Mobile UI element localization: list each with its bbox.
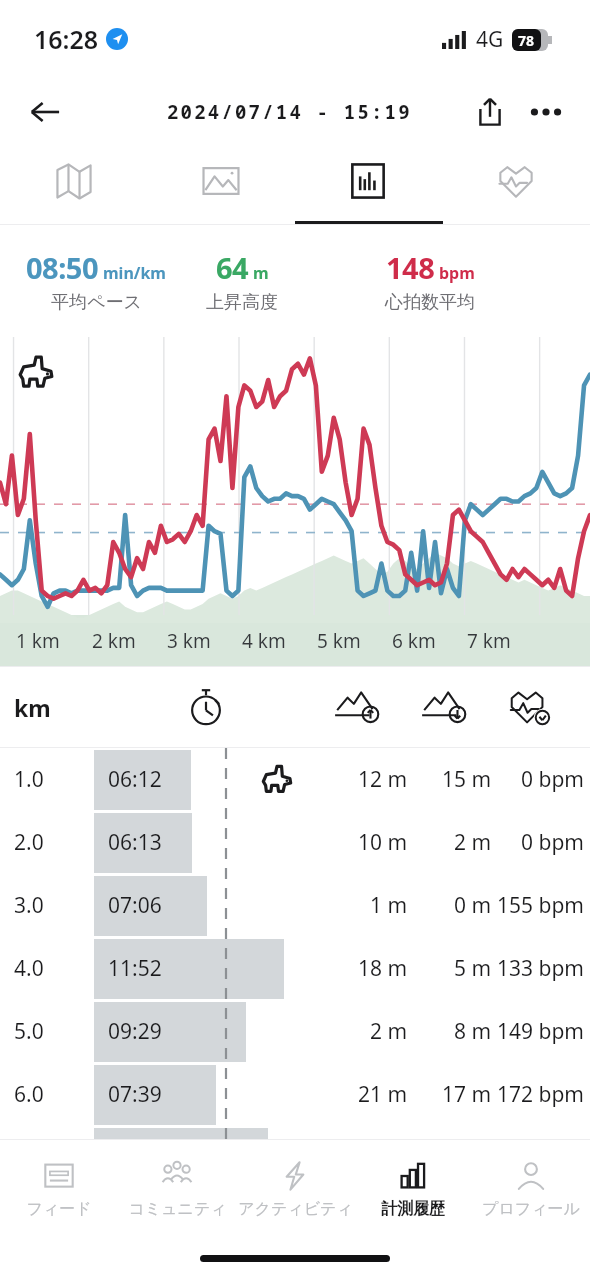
staticText: 06:12 bbox=[108, 765, 162, 794]
button[interactable]: 5.0 bbox=[0, 1000, 590, 1063]
button[interactable]: 2.0 bbox=[0, 811, 590, 874]
staticText: 2024/07/14 - 15:19 bbox=[167, 99, 412, 125]
button[interactable]: プロフィール bbox=[472, 1140, 590, 1236]
staticText: 1.0 bbox=[14, 765, 44, 794]
staticText: 16:28 bbox=[34, 22, 99, 56]
button[interactable]: Heart rate tab bbox=[442, 146, 590, 224]
staticText: 2 m bbox=[454, 828, 492, 857]
other: Descent bbox=[419, 681, 471, 733]
staticText: 7 km bbox=[467, 628, 511, 654]
staticText: プロフィール bbox=[482, 1199, 580, 1219]
button[interactable]: 6.0 bbox=[0, 1063, 590, 1126]
staticText: 18 m bbox=[358, 954, 408, 983]
staticText: 08:50 bbox=[26, 248, 99, 287]
staticText: 3 km bbox=[167, 628, 211, 654]
staticText: min/km bbox=[103, 262, 166, 284]
staticText: 0 m bbox=[454, 891, 492, 920]
button[interactable]: Map tab bbox=[0, 146, 147, 224]
staticText: 144 bpm bbox=[497, 1143, 584, 1172]
button[interactable]: Photos tab bbox=[147, 146, 294, 224]
staticText: 3.0 bbox=[14, 891, 44, 920]
staticText: 21 m bbox=[358, 1080, 408, 1109]
button[interactable]: フィード bbox=[0, 1140, 118, 1236]
other: Average heart rate bbox=[505, 683, 553, 731]
staticText: 172 bpm bbox=[497, 1080, 584, 1109]
staticText: 5.0 bbox=[14, 1017, 44, 1046]
staticText: 計測履歴 bbox=[381, 1199, 445, 1219]
staticText: 0 bpm bbox=[521, 765, 584, 794]
staticText: コミュニティ bbox=[128, 1199, 227, 1219]
staticText: 4 km bbox=[242, 628, 286, 654]
staticText: 2 km bbox=[92, 628, 136, 654]
other: Duration bbox=[185, 686, 227, 728]
staticText: 上昇高度 bbox=[206, 291, 278, 314]
staticText: 149 bpm bbox=[497, 1017, 584, 1046]
staticText: 4G bbox=[476, 25, 504, 54]
button[interactable]: Share bbox=[462, 84, 518, 140]
staticText: フィード bbox=[26, 1199, 92, 1219]
staticText: 0 bpm bbox=[521, 828, 584, 857]
staticText: 平均ペース bbox=[51, 291, 142, 314]
staticText: 148 bbox=[386, 248, 435, 287]
button[interactable]: 1.0 bbox=[0, 748, 590, 811]
staticText: 06:13 bbox=[108, 828, 162, 857]
staticText: 6 km bbox=[392, 628, 436, 654]
button[interactable]: Back bbox=[18, 85, 72, 139]
staticText: km bbox=[14, 692, 51, 723]
staticText: 07:06 bbox=[108, 891, 162, 920]
button[interactable]: Charts tab bbox=[294, 146, 442, 224]
staticText: 4.0 bbox=[14, 954, 44, 983]
staticText: 5 m bbox=[454, 954, 492, 983]
staticText: m bbox=[253, 262, 269, 284]
other: Ascent bbox=[332, 681, 384, 733]
button[interactable]: 7.0 bbox=[0, 1126, 590, 1189]
staticText: アクティビティ bbox=[238, 1199, 353, 1219]
button[interactable]: アクティビティ bbox=[236, 1140, 354, 1236]
staticText: 64 bbox=[216, 248, 249, 287]
staticText: 2.0 bbox=[14, 828, 44, 857]
staticText: 2 m bbox=[370, 1017, 408, 1046]
staticText: 12 m bbox=[358, 765, 408, 794]
staticText: 07:39 bbox=[108, 1080, 162, 1109]
button[interactable]: 3.0 bbox=[0, 874, 590, 937]
staticText: 10 m bbox=[358, 828, 408, 857]
staticText: 6.0 bbox=[14, 1080, 44, 1109]
staticText: 155 bpm bbox=[497, 891, 584, 920]
staticText: 11:52 bbox=[108, 954, 162, 983]
staticText: bpm bbox=[439, 262, 475, 284]
staticText: 09:29 bbox=[108, 1017, 162, 1046]
button[interactable]: 計測履歴 bbox=[354, 1140, 472, 1236]
button[interactable]: 4.0 bbox=[0, 937, 590, 1000]
staticText: 133 bpm bbox=[497, 954, 584, 983]
staticText: 15 m bbox=[442, 765, 492, 794]
staticText: 心拍数平均 bbox=[385, 291, 475, 314]
staticText: 8 m bbox=[454, 1017, 492, 1046]
staticText: 5 km bbox=[317, 628, 361, 654]
button[interactable]: More options bbox=[518, 84, 574, 140]
staticText: 1 km bbox=[16, 628, 60, 654]
staticText: 1 m bbox=[370, 891, 408, 920]
staticText: 78 bbox=[518, 31, 535, 50]
button[interactable]: コミュニティ bbox=[118, 1140, 236, 1236]
staticText: 17 m bbox=[442, 1080, 492, 1109]
